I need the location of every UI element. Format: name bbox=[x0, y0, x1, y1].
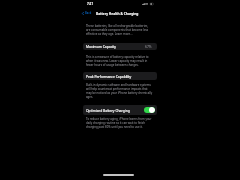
staticText: These batteries, like all rechargeable b… bbox=[86, 24, 153, 36]
staticText: Back bbox=[85, 11, 92, 15]
staticText: Maximum Capacity bbox=[86, 44, 117, 49]
staticText: Battery Health & Charging bbox=[96, 11, 139, 15]
staticText: Peak Performance Capability bbox=[86, 74, 132, 79]
button[interactable]: Back bbox=[82, 11, 92, 15]
button[interactable]: Maximum Capacity bbox=[83, 43, 157, 50]
staticText: 7:21 bbox=[87, 2, 94, 6]
staticText: Optimized Battery Charging bbox=[86, 108, 130, 113]
button[interactable]: Optimized Battery Charging bbox=[83, 105, 157, 115]
button[interactable]: Optimized Battery Charging bbox=[144, 107, 155, 113]
staticText: This is a measure of battery capacity re… bbox=[86, 55, 153, 67]
button[interactable]: Peak Performance Capability bbox=[83, 72, 157, 80]
staticText: Built-in dynamic software and hardware s… bbox=[86, 83, 153, 99]
staticText: To reduce battery aging, iPhone learns f… bbox=[86, 117, 153, 129]
staticText: 67% bbox=[145, 44, 152, 49]
